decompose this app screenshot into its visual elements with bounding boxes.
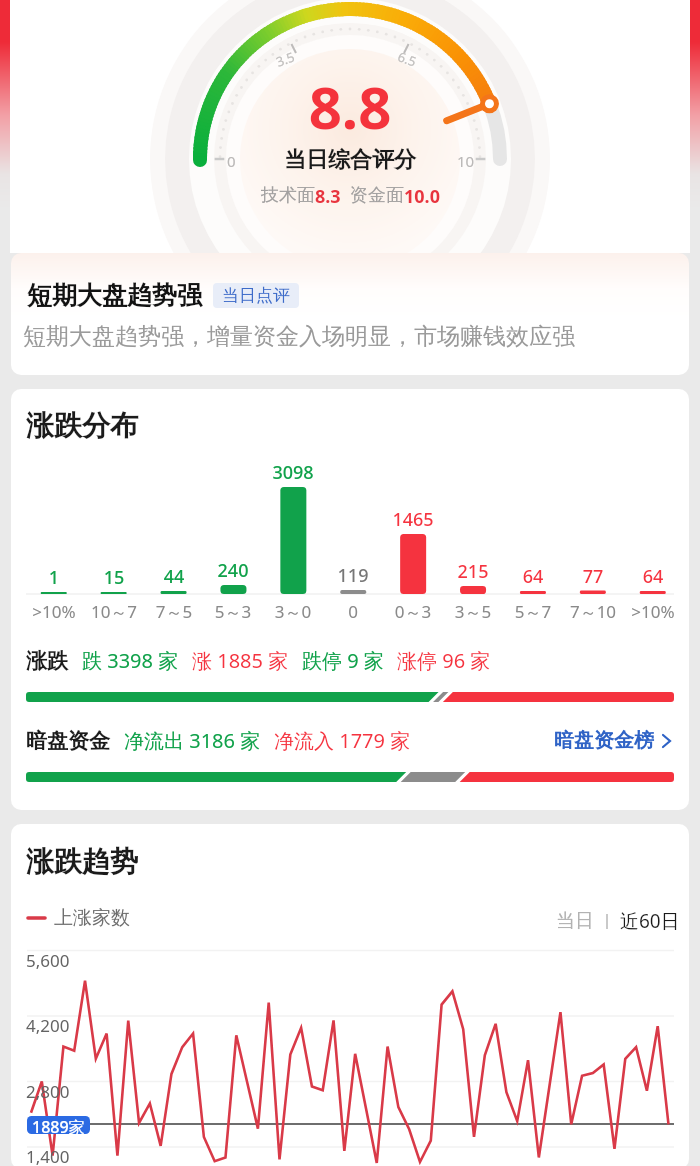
- staticText: 10～7: [79, 600, 149, 623]
- staticText: 涨跌趋势: [26, 844, 138, 879]
- staticText: 5～7: [498, 600, 568, 623]
- button[interactable]: 近60日: [617, 906, 683, 936]
- staticText: 215: [438, 559, 508, 584]
- staticText: 6.5: [395, 47, 419, 71]
- staticText: >10%: [618, 600, 688, 623]
- staticText: 240: [198, 558, 268, 583]
- staticText: 近60日: [620, 908, 680, 934]
- staticText: 上涨家数: [54, 906, 130, 930]
- staticText: 0: [318, 600, 388, 623]
- staticText: 4,200: [26, 1014, 70, 1037]
- staticText: 10.0: [404, 184, 440, 209]
- staticText: 64: [618, 564, 688, 589]
- staticText: 8.8: [250, 67, 450, 146]
- button[interactable]: 短期大盘趋势强: [11, 253, 689, 375]
- staticText: 119: [318, 563, 388, 588]
- staticText: 技术面: [261, 184, 315, 207]
- staticText: 8.3: [315, 184, 341, 209]
- button[interactable]: 暗盘资金榜: [554, 728, 676, 753]
- staticText: 7～5: [139, 600, 209, 623]
- button[interactable]: 当日: [553, 907, 597, 935]
- staticText: 3～0: [258, 600, 328, 623]
- staticText: 5～3: [198, 600, 268, 623]
- staticText: 5,600: [26, 949, 70, 972]
- staticText: 净流入 1779 家: [274, 727, 411, 754]
- staticText: 暗盘资金: [26, 728, 110, 754]
- staticText: 涨跌分布: [26, 408, 138, 443]
- staticText: 暗盘资金榜: [554, 728, 654, 753]
- staticText: 1: [19, 565, 89, 590]
- staticText: 1465: [378, 507, 448, 532]
- staticText: 短期大盘趋势强，增量资金入场明显，市场赚钱效应强: [23, 322, 575, 351]
- staticText: 2,800: [26, 1080, 70, 1103]
- staticText: 跌停 9 家: [302, 647, 384, 674]
- staticText: 当日: [556, 909, 594, 933]
- staticText: 当日综合评分: [250, 146, 450, 174]
- staticText: 跌 3398 家: [82, 647, 179, 674]
- staticText: 资金面: [350, 184, 404, 207]
- staticText: 3～5: [438, 600, 508, 623]
- staticText: 短期大盘趋势强: [27, 280, 202, 311]
- staticText: 64: [498, 564, 568, 589]
- staticText: 1,400: [26, 1145, 70, 1166]
- staticText: 净流出 3186 家: [124, 727, 261, 754]
- staticText: 3098: [258, 460, 328, 485]
- staticText: 0: [227, 151, 236, 171]
- staticText: 涨跌: [26, 648, 68, 674]
- staticText: 7～10: [558, 600, 628, 623]
- staticText: 0～3: [378, 600, 448, 623]
- staticText: 15: [79, 565, 149, 590]
- staticText: >10%: [19, 600, 89, 623]
- staticText: 1889家: [32, 1116, 85, 1134]
- staticText: 44: [139, 564, 209, 589]
- staticText: 3.5: [273, 47, 297, 71]
- staticText: 涨停 96 家: [397, 647, 491, 674]
- staticText: 当日点评: [222, 285, 290, 306]
- staticText: 涨 1885 家: [192, 647, 289, 674]
- staticText: 10: [457, 151, 475, 171]
- staticText: 77: [558, 564, 628, 589]
